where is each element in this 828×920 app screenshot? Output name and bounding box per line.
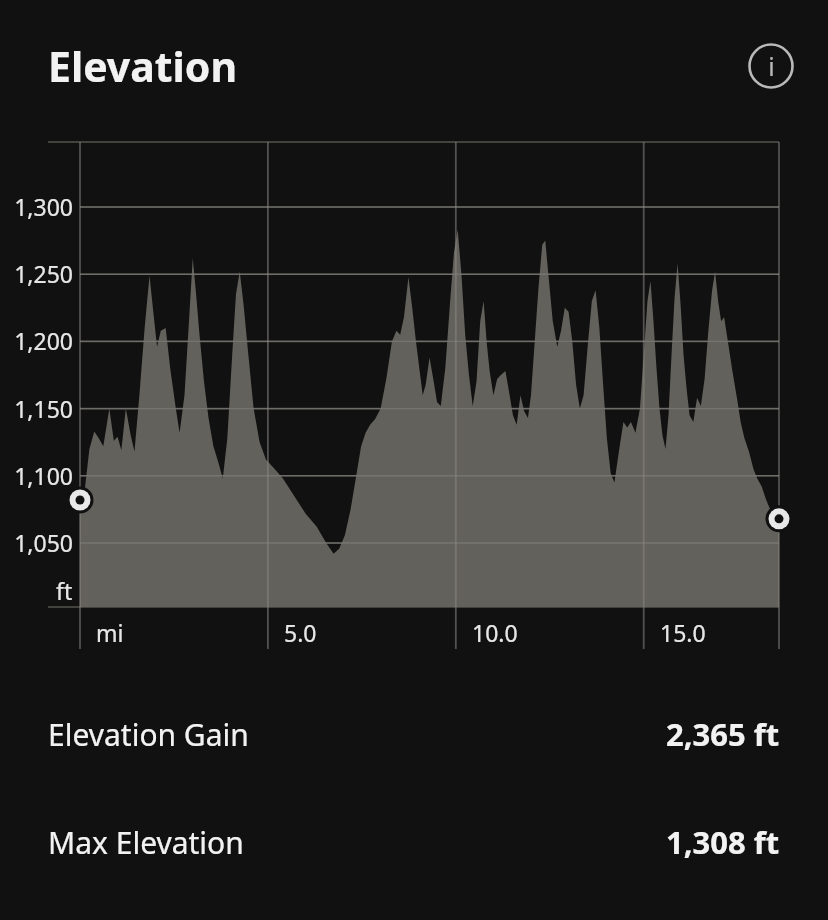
staticText: 2,365 ft	[666, 713, 780, 755]
staticText: 1,050	[14, 527, 73, 558]
staticText: 1,200	[14, 325, 73, 356]
staticText: 1,100	[14, 460, 73, 491]
staticText: Elevation	[48, 38, 238, 94]
button[interactable]: Max Elevation	[0, 788, 828, 896]
button[interactable]: Elevation Gain	[0, 680, 828, 788]
staticText: Elevation Gain	[48, 714, 249, 755]
staticText: 15.0	[660, 617, 706, 648]
button[interactable]: Information	[738, 33, 804, 99]
staticText: ft	[56, 575, 73, 606]
staticText: 5.0	[284, 617, 317, 648]
staticText: 1,300	[14, 191, 73, 222]
staticText: mi	[96, 617, 124, 648]
staticText: i	[768, 49, 775, 83]
staticText: Max Elevation	[48, 822, 244, 863]
staticText: 10.0	[472, 617, 518, 648]
staticText: 1,150	[14, 393, 73, 424]
staticText: 1,250	[14, 258, 73, 289]
staticText: 1,308 ft	[666, 821, 780, 863]
